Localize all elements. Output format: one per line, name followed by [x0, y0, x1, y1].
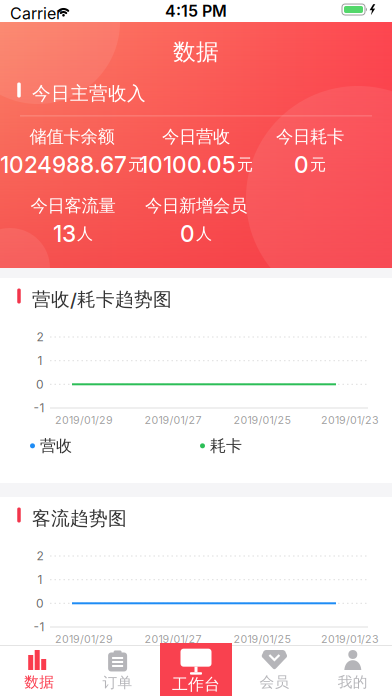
- staticText: 2019/01/25: [233, 633, 290, 645]
- staticText: 客流趋势图: [32, 507, 127, 530]
- staticText: 2: [36, 330, 43, 344]
- staticText: 0: [294, 151, 309, 178]
- staticText: 0: [36, 377, 44, 391]
- staticText: 0: [36, 596, 44, 610]
- staticText: 4:15 PM: [165, 2, 227, 20]
- staticText: 我的: [338, 673, 368, 691]
- staticText: 营收: [40, 436, 72, 456]
- staticText: 1024988.67: [0, 151, 127, 178]
- staticText: 13: [53, 220, 76, 247]
- staticText: 人: [77, 224, 93, 244]
- staticText: 订单: [103, 673, 133, 691]
- staticText: Carrier: [10, 4, 62, 23]
- staticText: 10100.05: [139, 151, 236, 178]
- button[interactable]: 数据: [0, 645, 78, 696]
- staticText: 1: [37, 354, 42, 368]
- staticText: 2019/01/27: [144, 414, 201, 426]
- button[interactable]: 订单: [79, 645, 157, 696]
- staticText: 耗卡: [210, 436, 242, 456]
- button[interactable]: 我的: [314, 645, 392, 696]
- staticText: 今日耗卡: [276, 126, 344, 147]
- staticText: 2019/01/25: [233, 414, 290, 426]
- staticText: -1: [33, 401, 44, 415]
- staticText: 今日营收: [162, 126, 230, 147]
- staticText: 数据: [173, 38, 219, 66]
- staticText: 1: [37, 573, 42, 587]
- staticText: 2019/01/29: [55, 633, 113, 645]
- staticText: 2019/01/23: [321, 414, 379, 426]
- staticText: 今日新增会员: [145, 195, 247, 216]
- staticText: 会员: [259, 673, 289, 691]
- staticText: 数据: [24, 673, 54, 691]
- staticText: 人: [196, 224, 212, 244]
- staticText: 元: [128, 155, 144, 175]
- staticText: 今日客流量: [30, 195, 115, 216]
- staticText: 2019/01/27: [144, 633, 201, 645]
- staticText: 元: [310, 155, 326, 175]
- button[interactable]: 会员: [235, 645, 313, 696]
- staticText: 0: [180, 220, 195, 247]
- staticText: 储值卡余额: [29, 126, 114, 147]
- button[interactable]: 工作台: [160, 643, 232, 696]
- staticText: 工作台: [172, 675, 220, 694]
- staticText: -1: [33, 620, 44, 634]
- staticText: 2: [36, 549, 43, 563]
- staticText: 营收/耗卡趋势图: [32, 288, 172, 311]
- staticText: 2019/01/23: [321, 633, 379, 645]
- staticText: 元: [237, 155, 253, 175]
- staticText: 今日主营收入: [32, 82, 146, 105]
- staticText: 2019/01/29: [55, 414, 113, 426]
